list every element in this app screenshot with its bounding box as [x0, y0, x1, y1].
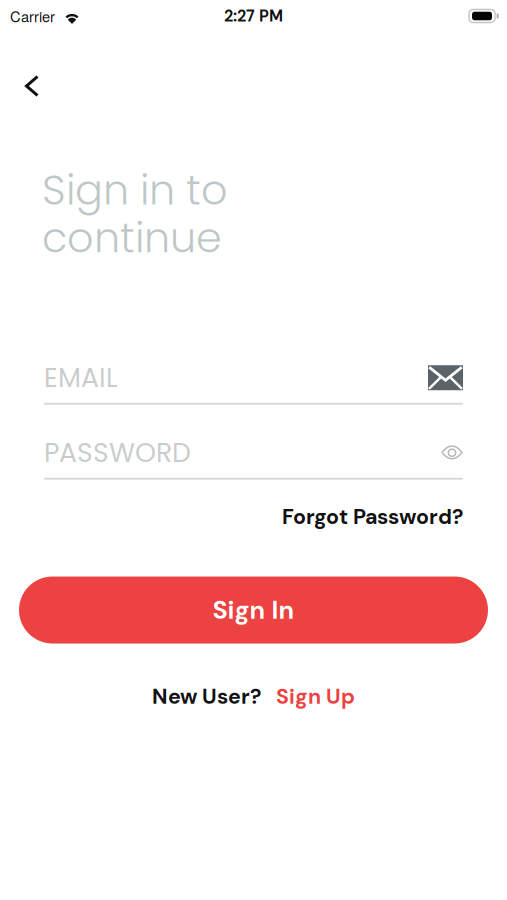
staticText: Carrier	[10, 5, 55, 26]
staticText: Sign In	[212, 593, 294, 626]
button[interactable]: Sign In	[19, 576, 488, 643]
staticText: Forgot Password?	[282, 503, 463, 530]
staticText: Sign in to	[42, 161, 228, 219]
staticText: New User?	[152, 682, 261, 710]
button[interactable]: Sign Up	[276, 682, 355, 710]
button[interactable]: Forgot Password?	[282, 503, 463, 530]
button[interactable]: Back	[0, 32, 61, 118]
staticText: 2:27 PM	[224, 6, 283, 26]
staticText: continue	[42, 209, 222, 267]
staticText: EMAIL	[44, 359, 118, 396]
staticText: PASSWORD	[44, 434, 191, 471]
staticText: Sign Up	[276, 682, 355, 710]
